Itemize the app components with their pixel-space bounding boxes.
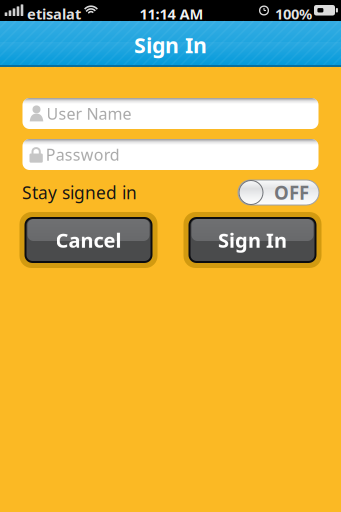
button[interactable]: Cancel bbox=[19, 212, 157, 268]
staticText: OFF bbox=[274, 180, 309, 205]
staticText: Password bbox=[46, 144, 120, 165]
button[interactable]: Sign In bbox=[183, 212, 321, 268]
button[interactable]: Password bbox=[22, 139, 318, 170]
staticText: Stay signed in bbox=[22, 181, 137, 204]
staticText: Sign In bbox=[218, 227, 287, 253]
staticText: etisalat bbox=[27, 4, 81, 23]
staticText: 100% bbox=[275, 4, 312, 23]
staticText: Sign In bbox=[134, 31, 207, 59]
staticText: Cancel bbox=[55, 227, 121, 253]
button[interactable]: User Name bbox=[22, 98, 318, 129]
button[interactable]: Stay signed in bbox=[238, 180, 319, 205]
staticText: 11:14 AM bbox=[139, 4, 203, 23]
staticText: User Name bbox=[46, 103, 131, 124]
